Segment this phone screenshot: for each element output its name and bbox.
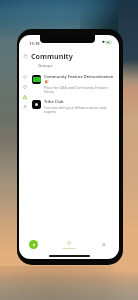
button[interactable]: Explore — [19, 82, 31, 92]
button[interactable]: Tribe Club — [32, 99, 118, 114]
button[interactable]: Profile tab — [93, 237, 115, 253]
staticText: Connect with your fellow creators and ex… — [44, 105, 118, 114]
button[interactable]: Favorites — [19, 72, 31, 82]
staticText: Tribe Club — [44, 99, 64, 104]
button[interactable]: Community — [19, 92, 31, 102]
button[interactable]: Open menu — [20, 50, 30, 61]
staticText: 15:18 — [29, 41, 40, 47]
staticText: Groups — [38, 63, 53, 69]
button[interactable]: Members — [19, 102, 31, 112]
staticText: Community — [62, 246, 76, 249]
button[interactable]: Community tab — [58, 237, 80, 253]
button[interactable]: Community Feature Demonstration 🎉 — [32, 74, 118, 94]
staticText: Community Feature Demonstration 🎉 — [44, 74, 118, 84]
button[interactable]: Create post — [24, 236, 43, 253]
staticText: Place for Q&A and Community Feature Demo — [44, 85, 118, 94]
staticText: Community — [31, 51, 73, 61]
